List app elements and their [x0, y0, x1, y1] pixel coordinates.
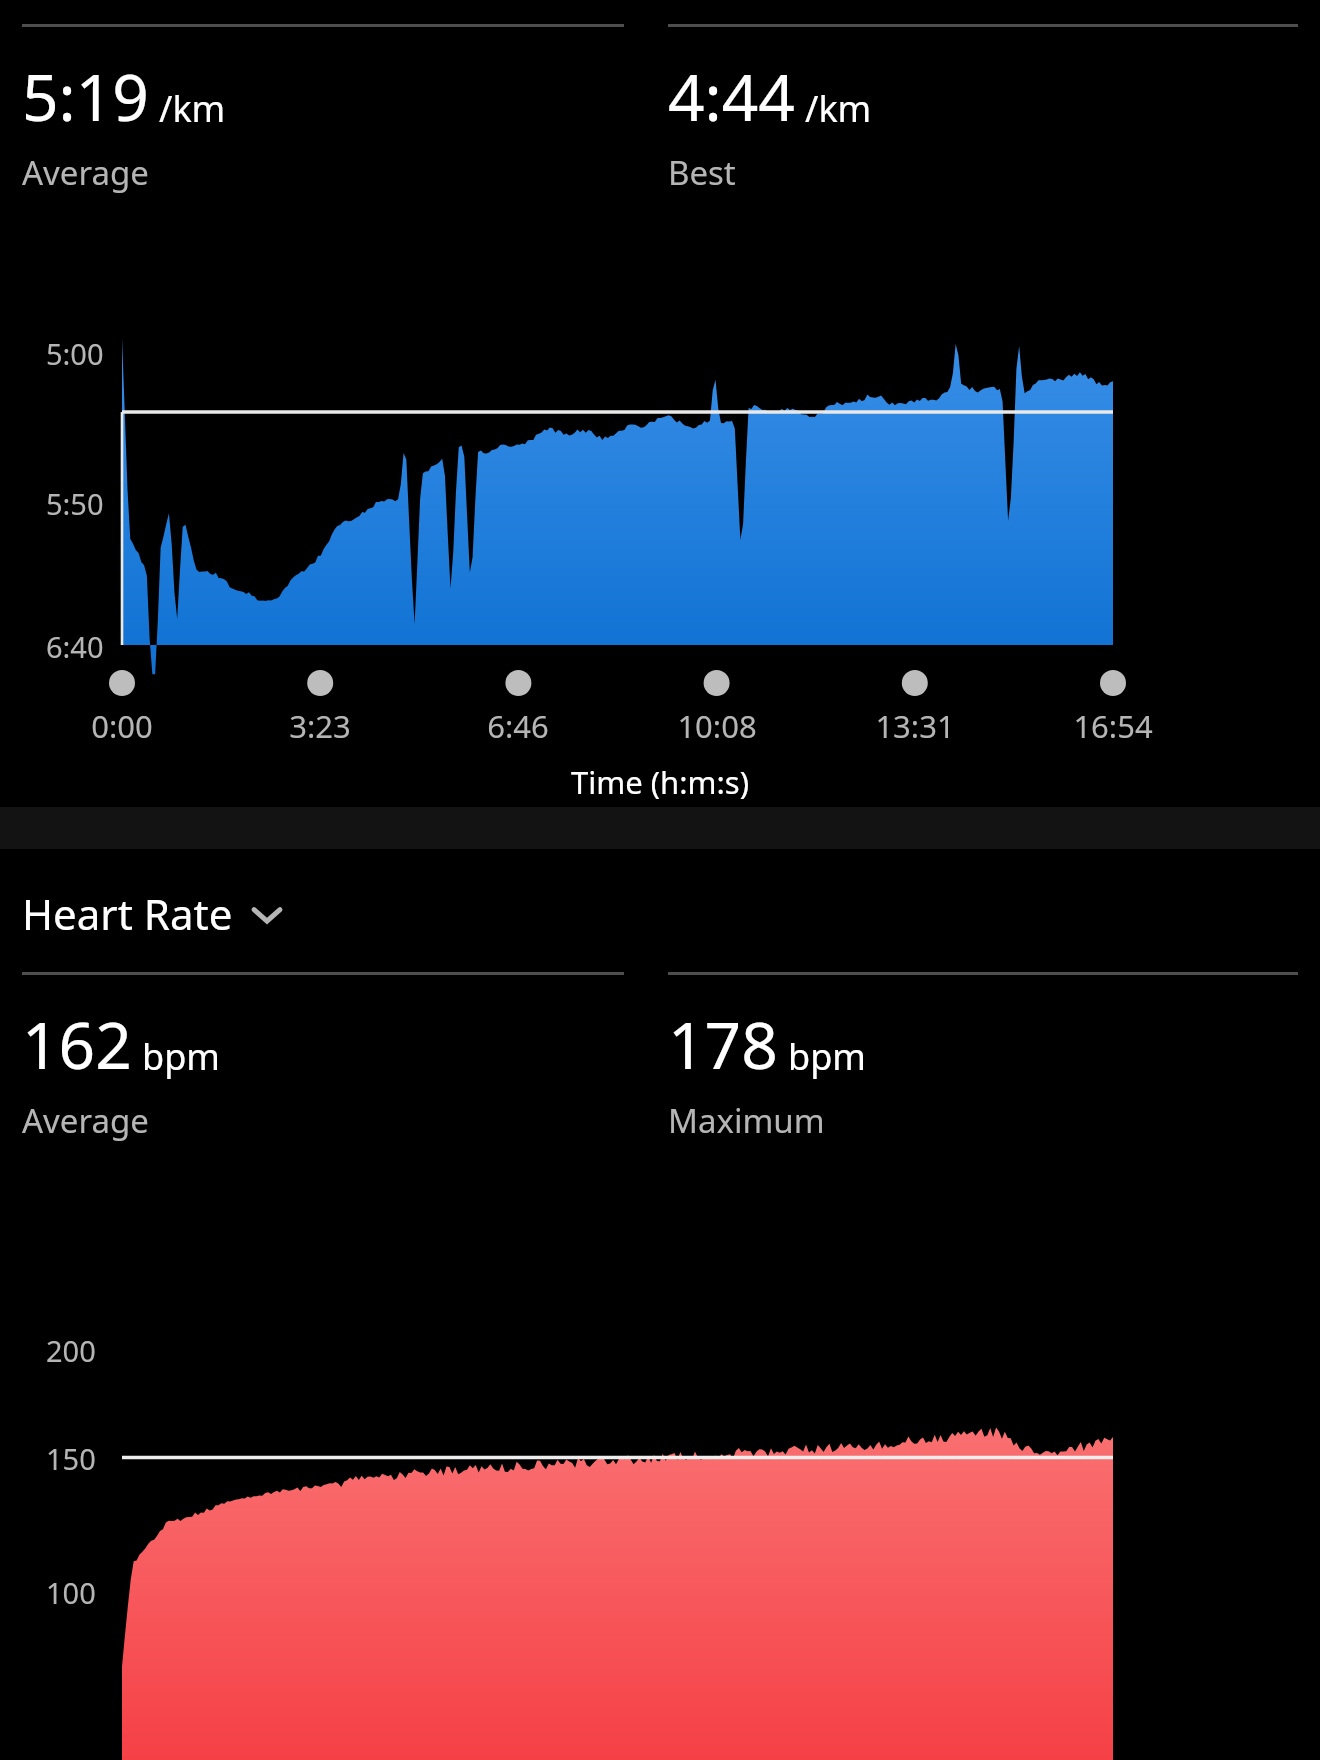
staticText: 13:31	[835, 705, 995, 747]
button[interactable]: 4:44	[668, 24, 1298, 195]
staticText: /km	[159, 84, 226, 133]
button[interactable]: 178	[668, 972, 1298, 1143]
staticText: 16:54	[1033, 705, 1193, 747]
staticText: 5:00	[46, 334, 104, 373]
staticText: /km	[805, 84, 872, 133]
staticText: bpm	[788, 1032, 866, 1081]
staticText: 100	[46, 1573, 96, 1612]
staticText: 200	[46, 1331, 96, 1370]
staticText: Average	[22, 1098, 149, 1143]
staticText: bpm	[142, 1032, 220, 1081]
staticText: 10:08	[637, 705, 797, 747]
staticText: 0:00	[42, 705, 202, 747]
staticText: Time (h:m:s)	[0, 761, 1320, 803]
staticText: Maximum	[668, 1098, 825, 1143]
staticText: 4:44	[668, 53, 795, 140]
staticText: 5:50	[46, 484, 104, 523]
button[interactable]: 5:19	[22, 24, 624, 195]
button[interactable]: Heart Rate	[22, 885, 285, 942]
staticText: 6:40	[46, 627, 104, 666]
staticText: 5:19	[22, 53, 149, 140]
staticText: 3:23	[240, 705, 400, 747]
staticText: 162	[22, 1001, 132, 1088]
staticText: Heart Rate	[22, 885, 233, 942]
staticText: 6:46	[438, 705, 598, 747]
staticText: Average	[22, 150, 149, 195]
button[interactable]: 162	[22, 972, 624, 1143]
staticText: 178	[668, 1001, 778, 1088]
staticText: Best	[668, 150, 736, 195]
other: Collapse Heart Rate	[249, 896, 285, 932]
staticText: 150	[46, 1439, 96, 1478]
